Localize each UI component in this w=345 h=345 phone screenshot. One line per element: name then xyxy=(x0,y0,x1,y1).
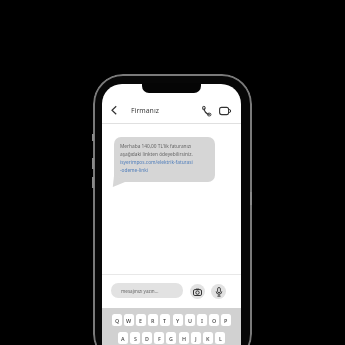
button[interactable] xyxy=(108,103,120,117)
button[interactable]: F xyxy=(154,332,164,344)
staticText: O xyxy=(212,317,217,324)
button[interactable]: J xyxy=(191,332,201,344)
button[interactable]: G xyxy=(166,332,176,344)
button[interactable]: E xyxy=(136,314,146,326)
button[interactable] xyxy=(202,106,211,117)
staticText: isyerimpos.com/elektrik-faturasi -odeme-… xyxy=(120,159,193,174)
button[interactable]: K xyxy=(203,332,213,344)
button[interactable]: D xyxy=(142,332,152,344)
staticText: T xyxy=(163,317,167,324)
button[interactable]: S xyxy=(130,332,140,344)
staticText: Merhaba 140,00 TL'lik faturanızı aşağıda… xyxy=(120,143,193,158)
staticText: K xyxy=(206,335,210,342)
staticText: L xyxy=(219,335,222,342)
staticText: S xyxy=(134,335,137,342)
staticText: R xyxy=(151,317,155,324)
button[interactable]: A xyxy=(118,332,128,344)
button[interactable]: mesajınızı yazın... xyxy=(111,283,183,298)
button[interactable] xyxy=(219,107,232,116)
button[interactable]: P xyxy=(221,314,231,326)
staticText: U xyxy=(188,317,193,324)
staticText: W xyxy=(126,317,132,324)
button[interactable]: O xyxy=(209,314,219,326)
staticText: Y xyxy=(176,317,180,324)
staticText: E xyxy=(139,317,143,324)
button[interactable]: T xyxy=(160,314,170,326)
button[interactable]: U xyxy=(185,314,195,326)
staticText: mesajınızı yazın... xyxy=(121,288,159,294)
button[interactable]: I xyxy=(197,314,207,326)
staticText: P xyxy=(224,317,228,324)
staticText: F xyxy=(158,335,161,342)
button[interactable]: W xyxy=(124,314,134,326)
staticText: G xyxy=(169,335,173,342)
button[interactable]: Y xyxy=(173,314,183,326)
staticText: Q xyxy=(115,317,120,324)
button[interactable]: isyerimpos.com/elektrik-faturasi -odeme-… xyxy=(120,159,193,174)
button[interactable]: L xyxy=(215,332,225,344)
button[interactable]: H xyxy=(179,332,189,344)
staticText: A xyxy=(121,335,125,342)
staticText: J xyxy=(195,335,197,342)
button[interactable]: R xyxy=(148,314,158,326)
staticText: I xyxy=(201,317,203,324)
staticText: Firmanız xyxy=(131,106,159,115)
button[interactable]: Q xyxy=(112,314,122,326)
button[interactable] xyxy=(190,284,205,299)
staticText: H xyxy=(182,335,187,342)
staticText: D xyxy=(145,335,149,342)
button[interactable] xyxy=(211,284,226,299)
